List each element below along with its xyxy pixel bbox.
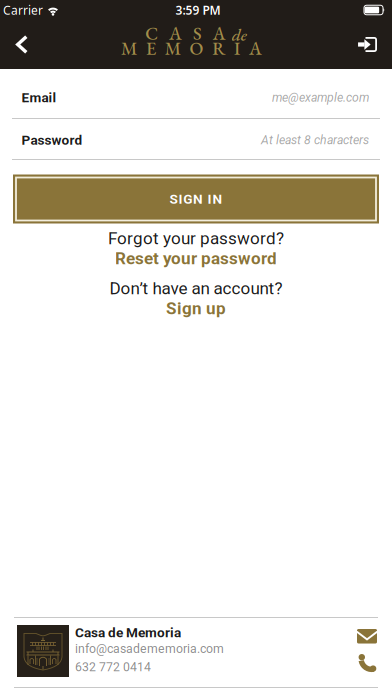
button[interactable]: Sign up	[166, 298, 226, 318]
button[interactable]: Email	[0, 69, 392, 119]
staticText: Reset your password	[115, 248, 277, 268]
staticText: R	[212, 36, 225, 60]
button[interactable]: Sign in	[348, 29, 392, 60]
staticText: At least 8 characters	[261, 133, 369, 147]
staticText: S	[193, 22, 202, 45]
staticText: Forgot your password?	[108, 228, 284, 248]
button[interactable]: Back	[0, 27, 40, 62]
staticText: E	[146, 36, 156, 60]
staticText: 3:59 PM	[175, 2, 220, 18]
button[interactable]: Call	[357, 653, 376, 673]
staticText: C	[145, 22, 158, 45]
staticText: O	[189, 36, 203, 60]
staticText: A	[213, 22, 226, 45]
staticText: 632 772 0414	[75, 660, 151, 674]
staticText: M	[121, 36, 137, 60]
staticText: I	[234, 36, 240, 60]
staticText: me@example.com	[272, 90, 369, 105]
button[interactable]: Reset your password	[115, 248, 277, 268]
staticText: Don’t have an account?	[109, 278, 282, 298]
button[interactable]: Password	[0, 119, 392, 160]
staticText: M	[165, 36, 181, 60]
staticText: de	[232, 23, 247, 46]
button[interactable]: SIGN IN	[0, 174, 392, 223]
staticText: A	[249, 36, 262, 60]
staticText: A	[169, 22, 182, 45]
staticText: Email	[21, 89, 56, 105]
staticText: SIGN IN	[170, 191, 222, 207]
staticText: Password	[21, 132, 82, 148]
button[interactable]: Email	[357, 629, 377, 643]
staticText: Sign up	[166, 298, 226, 318]
staticText: Carrier	[3, 2, 43, 18]
staticText: Casa de Memoria	[75, 625, 181, 641]
staticText: info@casadememoria.com	[75, 642, 224, 656]
